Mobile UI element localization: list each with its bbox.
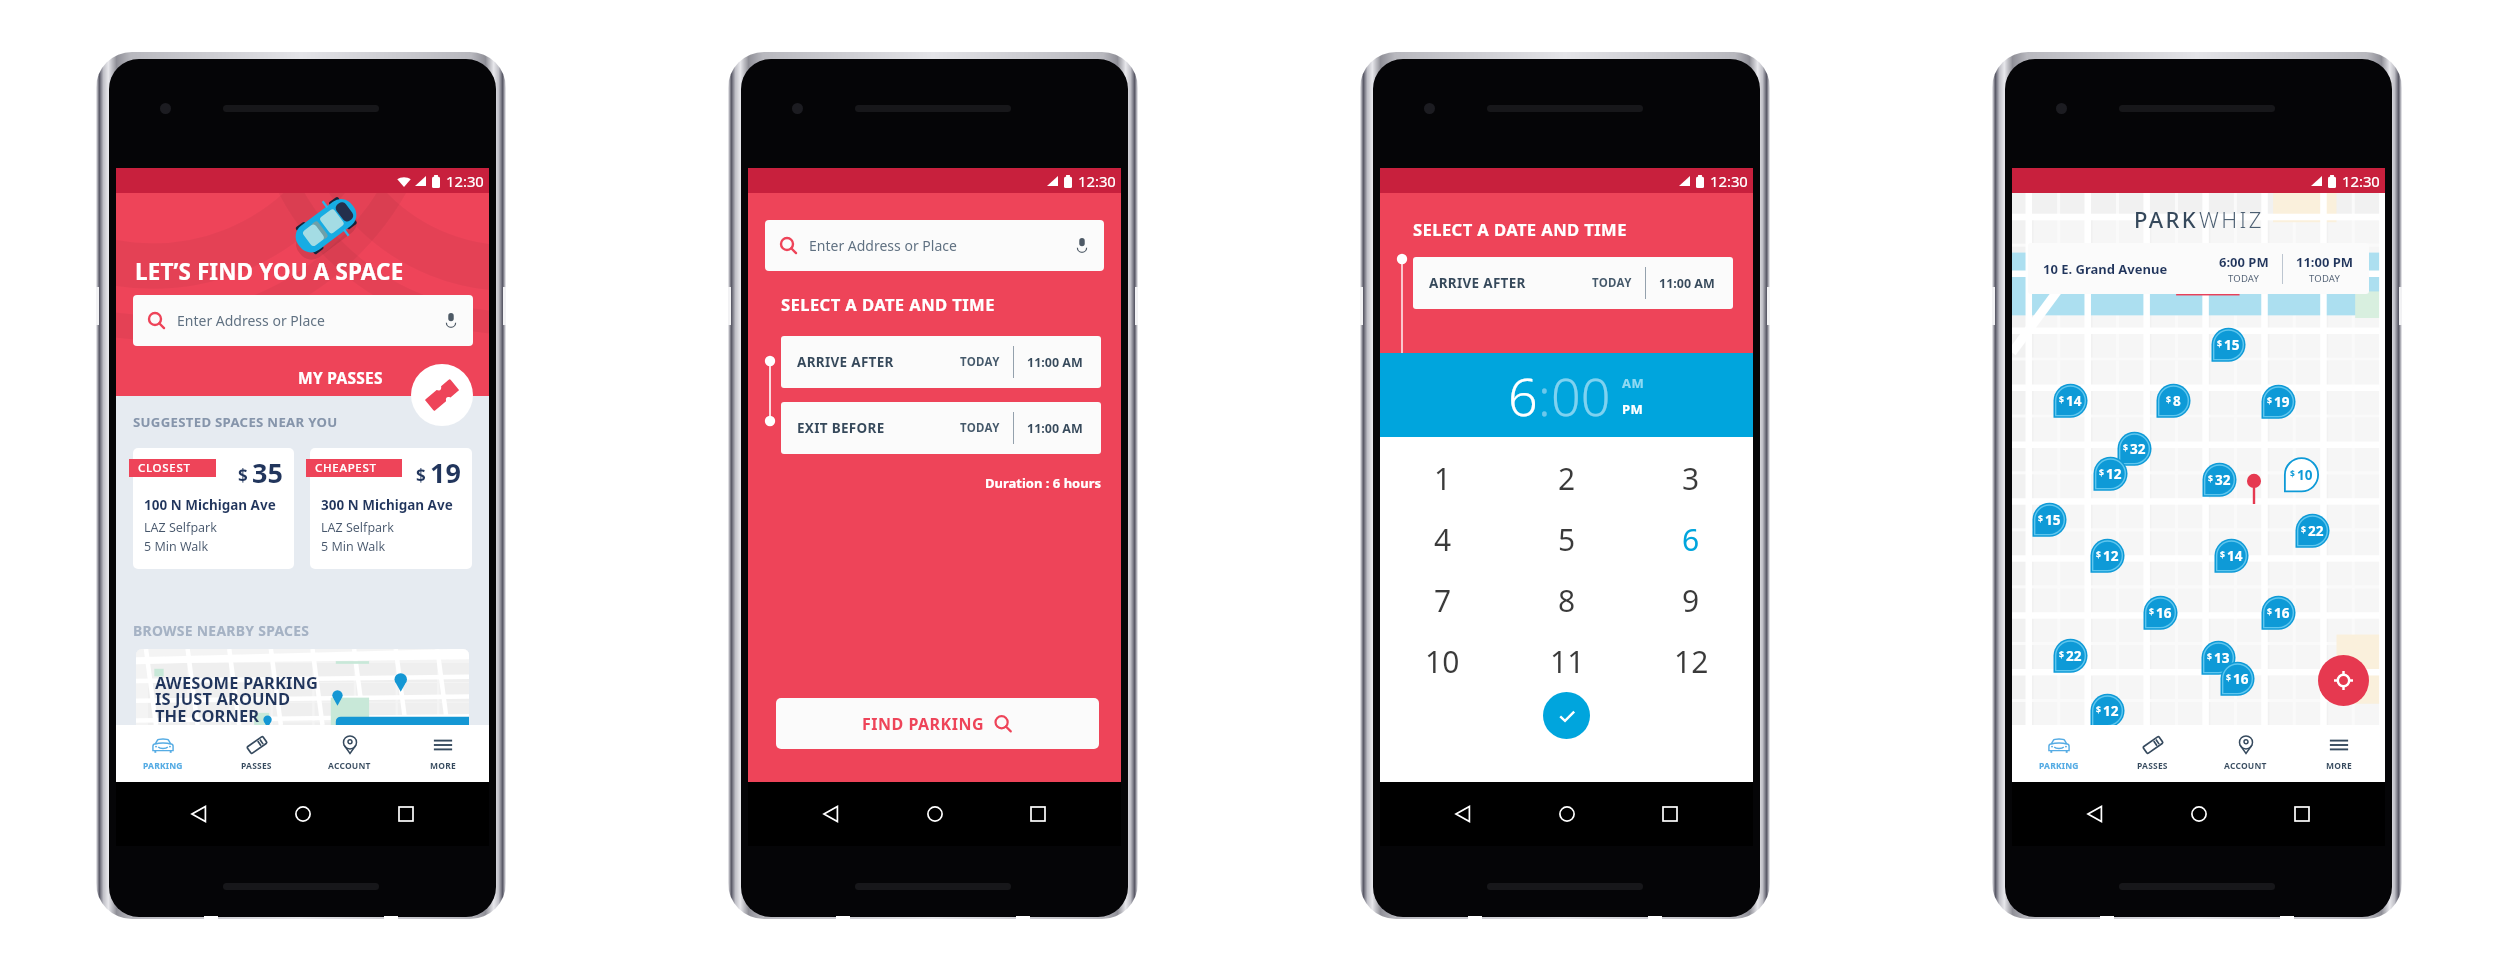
staticText: $: [2217, 338, 2222, 350]
staticText: 11:00 AM: [1659, 275, 1715, 292]
staticText: MORE: [2326, 760, 2352, 772]
button[interactable]: Parking $16: [2260, 595, 2297, 632]
staticText: 2: [1558, 458, 1576, 499]
button[interactable]: Back: [1442, 793, 1484, 835]
button[interactable]: 7: [1380, 570, 1505, 631]
button[interactable]: PARKING: [116, 725, 210, 782]
button[interactable]: Recents: [1017, 793, 1059, 835]
button[interactable]: Enter Address or Place: [133, 295, 473, 346]
button[interactable]: Recents: [385, 793, 427, 835]
button[interactable]: ACCOUNT: [2199, 725, 2292, 782]
button[interactable]: PASSES: [210, 725, 303, 782]
button[interactable]: 6: [1629, 509, 1753, 570]
button[interactable]: 1: [1380, 448, 1505, 509]
button[interactable]: Back: [810, 793, 852, 835]
button[interactable]: Home: [1546, 793, 1588, 835]
button[interactable]: Parking $12: [2092, 456, 2129, 493]
staticText: 32: [2130, 440, 2146, 458]
button[interactable]: Enter Address or Place: [765, 220, 1104, 271]
staticText: LAZ Selfpark: [321, 519, 394, 536]
button[interactable]: My location: [2318, 655, 2369, 706]
button[interactable]: Parking $12: [2089, 538, 2126, 575]
staticText: PASSES: [241, 760, 272, 772]
staticText: SUGGESTED SPACES NEAR YOU: [133, 413, 338, 431]
button[interactable]: $: [133, 448, 294, 569]
staticText: $: [2038, 513, 2043, 525]
button[interactable]: Parking $22: [2294, 513, 2331, 550]
staticText: $: [2207, 651, 2212, 663]
staticText: EXIT BEFORE: [797, 419, 885, 437]
button[interactable]: Parking $19: [2260, 384, 2297, 421]
button[interactable]: My passes: [411, 364, 473, 426]
button[interactable]: Confirm: [1543, 692, 1590, 739]
staticText: TODAY: [1592, 275, 1632, 291]
button[interactable]: Back: [2074, 793, 2116, 835]
staticText: AM: [1622, 374, 1645, 392]
button[interactable]: Parking $32: [2116, 431, 2153, 468]
staticText: PARK: [2134, 204, 2199, 234]
staticText: 12: [1674, 641, 1709, 682]
staticText: ARRIVE AFTER: [1429, 274, 1526, 292]
button[interactable]: Parking $14: [2052, 383, 2089, 420]
button[interactable]: Browse nearby spaces map: [136, 649, 469, 725]
staticText: $: [238, 464, 248, 487]
button[interactable]: Back: [178, 793, 220, 835]
staticText: 32: [2215, 471, 2231, 489]
button[interactable]: EXIT BEFORE: [781, 402, 1101, 454]
staticText: TODAY: [960, 354, 1000, 370]
button[interactable]: Parking $10: [2283, 457, 2320, 494]
button[interactable]: 5: [1505, 509, 1629, 570]
staticText: $: [2099, 467, 2104, 479]
staticText: 11:00 AM: [1027, 420, 1083, 437]
staticText: $: [2096, 549, 2101, 561]
staticText: $: [416, 464, 426, 487]
staticText: 11:00 AM: [1027, 354, 1083, 371]
button[interactable]: Recents: [1649, 793, 1691, 835]
staticText: 1: [1434, 458, 1452, 499]
button[interactable]: 3: [1629, 448, 1753, 509]
button[interactable]: Parking $8: [2155, 383, 2192, 420]
button[interactable]: 11: [1505, 631, 1629, 692]
button[interactable]: 4: [1380, 509, 1505, 570]
button[interactable]: Parking $13: [2200, 640, 2237, 677]
button[interactable]: FIND PARKING: [776, 698, 1099, 749]
button[interactable]: Recents: [2281, 793, 2323, 835]
button[interactable]: Home: [914, 793, 956, 835]
button[interactable]: 9: [1629, 570, 1753, 631]
button[interactable]: Parking $12: [2089, 693, 2126, 730]
button[interactable]: 2: [1505, 448, 1629, 509]
button[interactable]: Parking $22: [2052, 638, 2089, 675]
button[interactable]: Parking $14: [2213, 538, 2250, 575]
button[interactable]: PASSES: [2106, 725, 2199, 782]
staticText: 6: [1508, 360, 1538, 431]
button[interactable]: Home: [2178, 793, 2220, 835]
button[interactable]: Parking $32: [2201, 462, 2238, 499]
button[interactable]: Parking $16: [2142, 595, 2179, 632]
button[interactable]: ACCOUNT: [303, 725, 396, 782]
button[interactable]: PARKING: [2012, 725, 2106, 782]
staticText: 12: [2103, 547, 2119, 565]
button[interactable]: MORE: [2292, 725, 2385, 782]
button[interactable]: Parking $16: [2219, 661, 2256, 698]
button[interactable]: Parking $15: [2210, 327, 2247, 364]
staticText: CHEAPEST: [315, 460, 377, 476]
staticText: TODAY: [2228, 272, 2260, 285]
staticText: ARRIVE AFTER: [797, 353, 894, 371]
button[interactable]: ARRIVE AFTER: [1413, 257, 1733, 309]
button[interactable]: Home: [282, 793, 324, 835]
staticText: 15: [2045, 511, 2061, 529]
button[interactable]: 10 E. Grand Avenue: [2028, 243, 2369, 294]
staticText: 35: [252, 454, 283, 491]
button[interactable]: $: [310, 448, 472, 569]
staticText: $: [2123, 442, 2128, 454]
staticText: 22: [2066, 647, 2082, 665]
button[interactable]: 12: [1629, 631, 1753, 692]
button[interactable]: Parking $15: [2031, 502, 2068, 539]
button[interactable]: 8: [1505, 570, 1629, 631]
button[interactable]: MY PASSES: [298, 367, 383, 388]
button[interactable]: 10: [1380, 631, 1505, 692]
button[interactable]: MORE: [396, 725, 489, 782]
staticText: 16: [2274, 604, 2290, 622]
button[interactable]: ARRIVE AFTER: [781, 336, 1101, 388]
staticText: $: [2166, 394, 2171, 406]
